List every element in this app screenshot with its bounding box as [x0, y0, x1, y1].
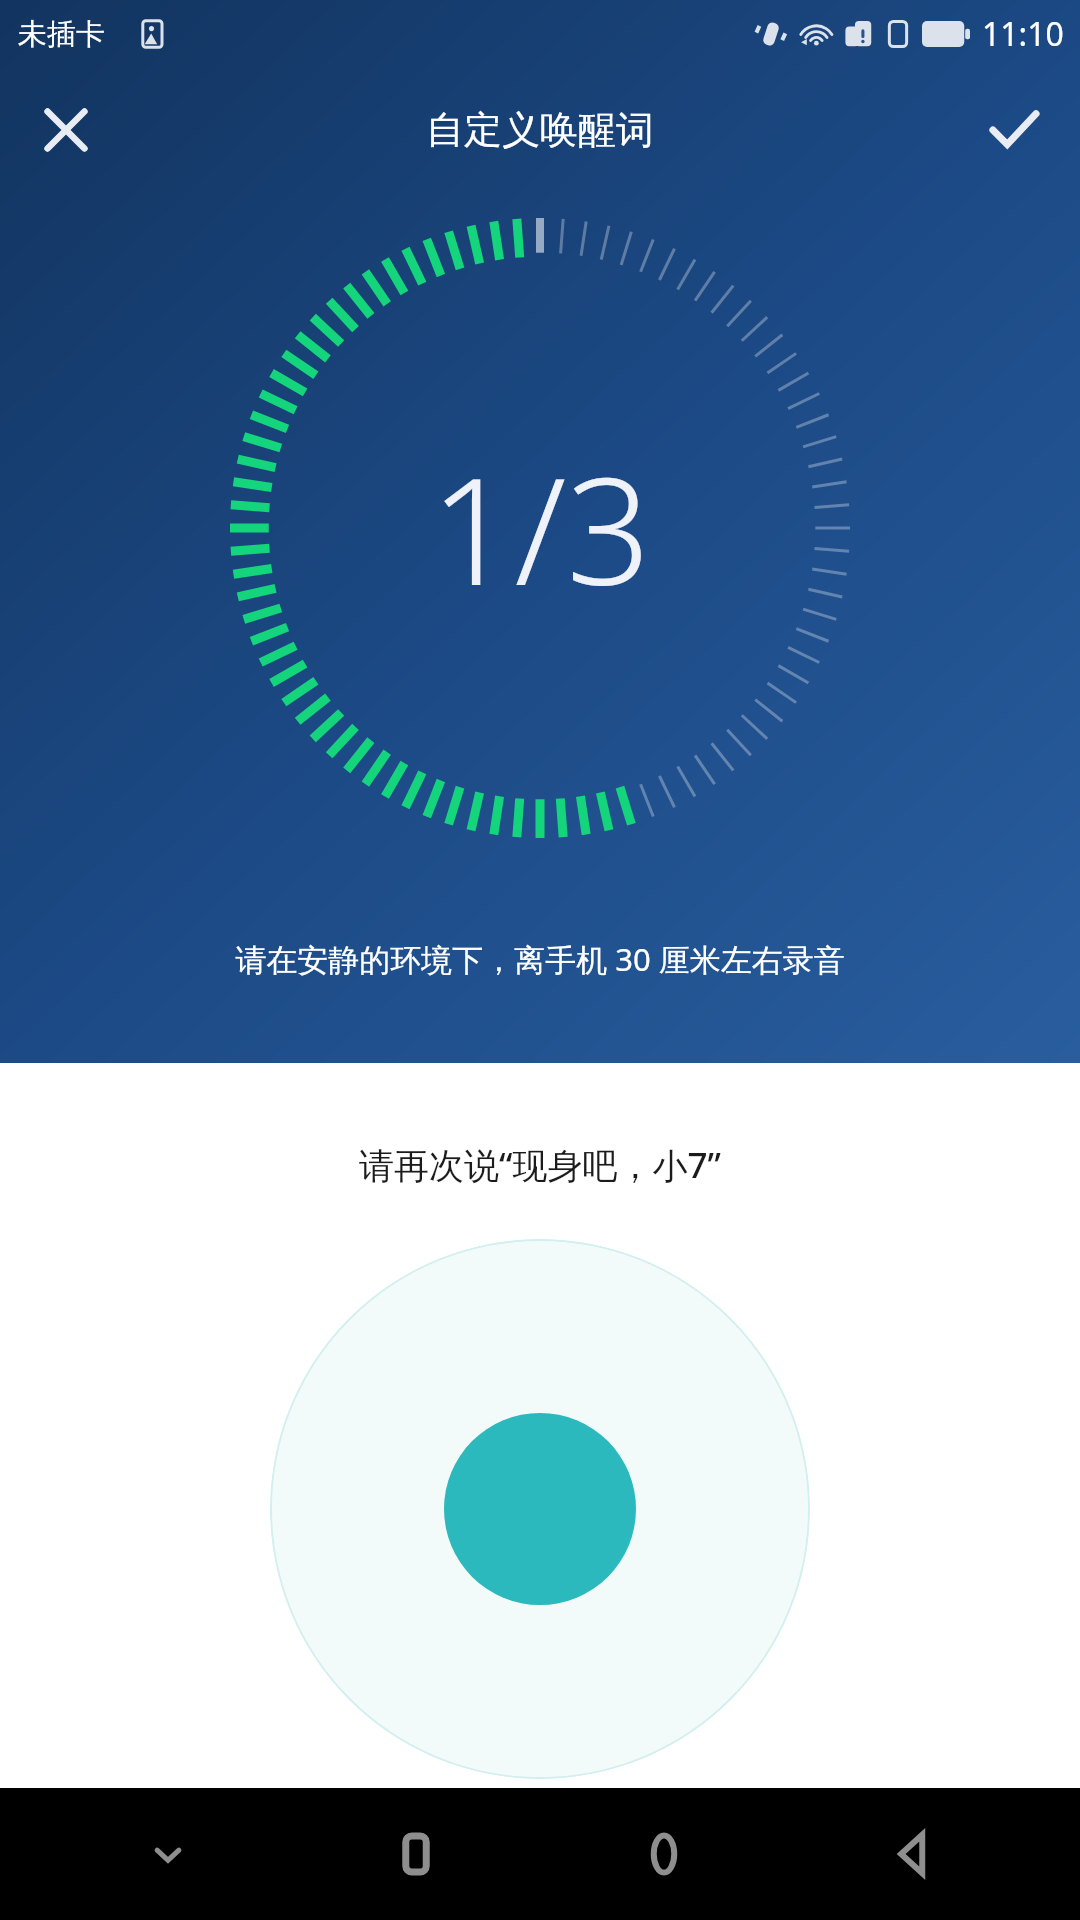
staticText: 请再次说“现身吧，小7” [0, 1141, 1080, 1189]
button[interactable]: Confirm [976, 92, 1052, 168]
button[interactable]: Home [540, 1788, 788, 1920]
staticText: 1/3 [430, 427, 651, 629]
button[interactable]: Hide keyboard [44, 1788, 292, 1920]
staticText: 未插卡 [18, 16, 105, 53]
staticText: 11:10 [982, 12, 1064, 56]
button[interactable]: Recents [292, 1788, 540, 1920]
button[interactable]: Close [28, 92, 104, 168]
button[interactable]: Back [788, 1788, 1036, 1920]
button[interactable]: Record [270, 1239, 810, 1779]
staticText: 请在安静的环境下，离手机 30 厘米左右录音 [0, 938, 1080, 980]
staticText: 自定义唤醒词 [426, 106, 654, 154]
